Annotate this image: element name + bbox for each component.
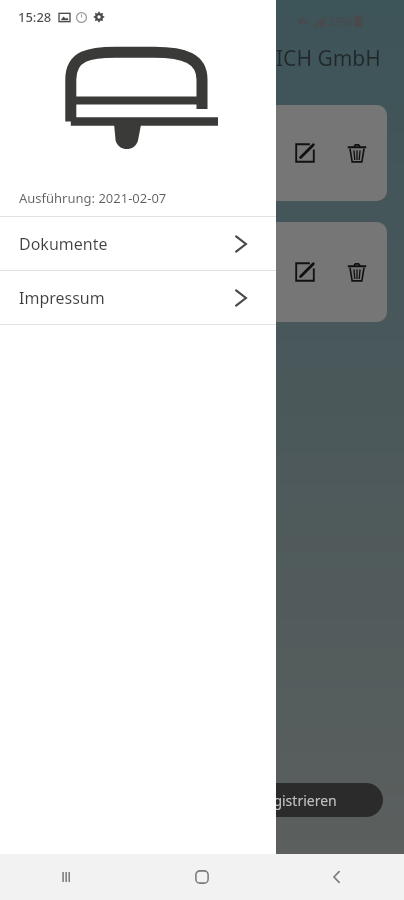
staticText: Ausführung: 2021-02-07	[19, 189, 167, 207]
staticText: Impressum	[19, 287, 105, 309]
button[interactable]: Back	[309, 854, 365, 900]
button[interactable]: Edit	[290, 138, 320, 168]
staticText: 59%	[328, 13, 352, 29]
button[interactable]: Dokumente	[0, 217, 276, 270]
button[interactable]: Edit	[12, 222, 387, 322]
staticText: registrieren	[260, 791, 337, 810]
button[interactable]: Delete	[342, 138, 372, 168]
staticText: ICH GmbH	[276, 44, 381, 73]
button[interactable]: Impressum	[0, 271, 276, 324]
staticText: 15:28	[18, 8, 52, 26]
button[interactable]: Delete	[342, 257, 372, 287]
button[interactable]: Edit	[12, 105, 387, 201]
staticText: Dokumente	[19, 233, 108, 255]
button[interactable]: Home	[174, 854, 230, 900]
button[interactable]: Edit	[290, 257, 320, 287]
button[interactable]: registrieren	[214, 783, 383, 817]
button[interactable]: Recents	[39, 854, 95, 900]
